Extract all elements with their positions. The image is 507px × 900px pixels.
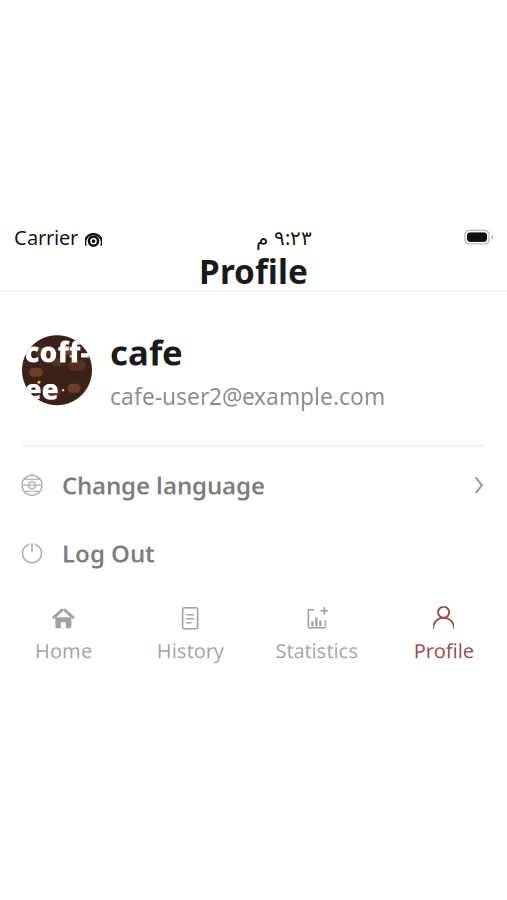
staticText: cafe-user2@example.com [110, 381, 385, 411]
button[interactable]: Change language [0, 454, 507, 516]
staticText: ٩:٢٣ م [255, 224, 311, 250]
staticText: Carrier [14, 224, 78, 250]
staticText: Profile [199, 249, 308, 293]
staticText: coffee [24, 333, 89, 407]
staticText: Log Out [62, 537, 155, 569]
staticText: Home [35, 637, 92, 664]
button[interactable]: Profile [380, 600, 507, 670]
button[interactable]: History [127, 600, 254, 670]
staticText: History [157, 637, 224, 664]
button[interactable]: Home [0, 600, 127, 670]
staticText: cafe [110, 329, 183, 375]
staticText: Statistics [275, 637, 358, 664]
button[interactable]: Statistics [253, 600, 380, 670]
staticText: Profile [414, 637, 474, 664]
button[interactable]: Log Out [0, 522, 507, 584]
staticText: Change language [62, 469, 265, 501]
